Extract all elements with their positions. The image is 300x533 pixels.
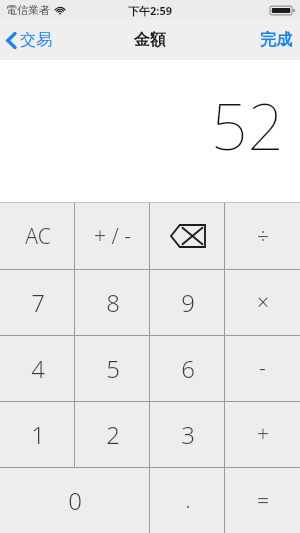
button[interactable]: 8 <box>75 270 150 335</box>
staticText: 1 <box>31 418 45 451</box>
button[interactable]: - <box>225 336 300 401</box>
button[interactable]: 7 <box>0 270 75 335</box>
button[interactable]: + <box>225 402 300 467</box>
button[interactable]: 2 <box>75 402 150 467</box>
staticText: + / - <box>94 222 131 251</box>
staticText: . <box>185 486 191 515</box>
staticText: 交易 <box>20 30 52 50</box>
button[interactable]: 9 <box>150 270 225 335</box>
button[interactable]: = <box>225 468 300 533</box>
button[interactable]: . <box>150 468 225 533</box>
staticText: 9 <box>181 286 195 319</box>
button[interactable]: 交易 <box>0 26 62 54</box>
staticText: 7 <box>31 286 45 319</box>
button[interactable]: 5 <box>75 336 150 401</box>
button[interactable]: AC <box>0 203 75 269</box>
button[interactable]: 3 <box>150 402 225 467</box>
staticText: × <box>257 288 269 317</box>
button[interactable]: 4 <box>0 336 75 401</box>
staticText: - <box>259 354 266 383</box>
button[interactable]: + / - <box>75 203 150 269</box>
staticText: 4 <box>31 352 45 385</box>
staticText: 0 <box>68 484 82 517</box>
staticText: 6 <box>181 352 195 385</box>
staticText: 52 <box>211 82 284 169</box>
staticText: = <box>257 486 269 515</box>
staticText: + <box>257 420 269 449</box>
staticText: 金額 <box>134 30 166 50</box>
button[interactable]: × <box>225 270 300 335</box>
staticText: 8 <box>106 286 120 319</box>
staticText: 3 <box>181 418 195 451</box>
button[interactable]: 1 <box>0 402 75 467</box>
staticText: 電信業者 <box>6 3 50 17</box>
staticText: ÷ <box>257 222 269 251</box>
button[interactable]: ÷ <box>225 203 300 269</box>
staticText: AC <box>25 222 51 251</box>
staticText: 2 <box>106 418 120 451</box>
button[interactable]: 0 <box>0 468 150 533</box>
button[interactable]: 完成 <box>252 26 300 54</box>
button[interactable]: Backspace <box>150 203 225 269</box>
staticText: 完成 <box>260 30 292 50</box>
staticText: 下午2:59 <box>128 3 172 18</box>
staticText: 5 <box>106 352 120 385</box>
button[interactable]: 6 <box>150 336 225 401</box>
